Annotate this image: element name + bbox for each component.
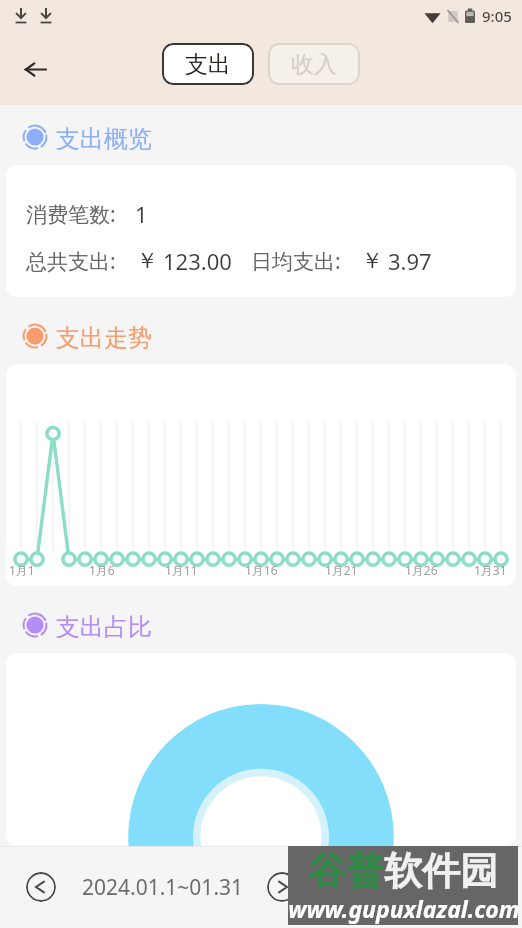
staticText: 1 — [135, 199, 148, 229]
staticText: 123.00 — [163, 246, 232, 276]
staticText: 1月26 — [405, 562, 438, 578]
button[interactable]: 收入 — [268, 43, 360, 85]
staticText: 3.97 — [388, 246, 432, 276]
button[interactable]: Back — [18, 52, 52, 86]
button[interactable]: 支出 — [162, 43, 254, 85]
button[interactable]: Previous period — [26, 872, 56, 902]
staticText: 9:05 — [482, 6, 512, 26]
staticText: 总共支出: — [26, 247, 116, 276]
staticText: 2024.01.1~01.31 — [82, 873, 244, 902]
staticText: 1月16 — [245, 562, 278, 578]
staticText: ￥ — [136, 247, 158, 275]
staticText: 1月31 — [474, 562, 507, 578]
staticText: 谷普 — [308, 847, 384, 895]
staticText: www.gupuxlazal.com — [288, 893, 518, 924]
staticText: 支出 — [185, 50, 231, 79]
staticText: 消费笔数: — [26, 200, 116, 229]
staticText: 支出概览 — [56, 124, 152, 150]
staticText: 支出占比 — [56, 612, 152, 638]
staticText: 软件园 — [384, 847, 498, 895]
button[interactable]: Next period — [267, 872, 297, 902]
staticText: 支出走势 — [56, 323, 152, 349]
staticText: ￥ — [361, 247, 383, 275]
staticText: 1月11 — [165, 562, 198, 578]
staticText: 1月1 — [9, 562, 35, 578]
staticText: 1月6 — [89, 562, 115, 578]
staticText: 收入 — [291, 50, 337, 79]
staticText: 日均支出: — [251, 247, 341, 276]
staticText: 1月21 — [325, 562, 358, 578]
